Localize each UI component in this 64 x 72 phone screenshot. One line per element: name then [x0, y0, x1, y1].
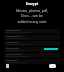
button[interactable]	[4, 29, 60, 34]
button[interactable]	[4, 59, 60, 64]
button[interactable]: Next	[49, 64, 56, 68]
button[interactable]	[4, 41, 60, 46]
button[interactable]	[4, 35, 60, 40]
button[interactable]	[4, 47, 60, 52]
staticText: Encrypt	[0, 2, 64, 6]
button[interactable]	[4, 53, 60, 58]
staticText: Movies, photos, pdf, Docs... can be adde…	[0, 8, 64, 24]
